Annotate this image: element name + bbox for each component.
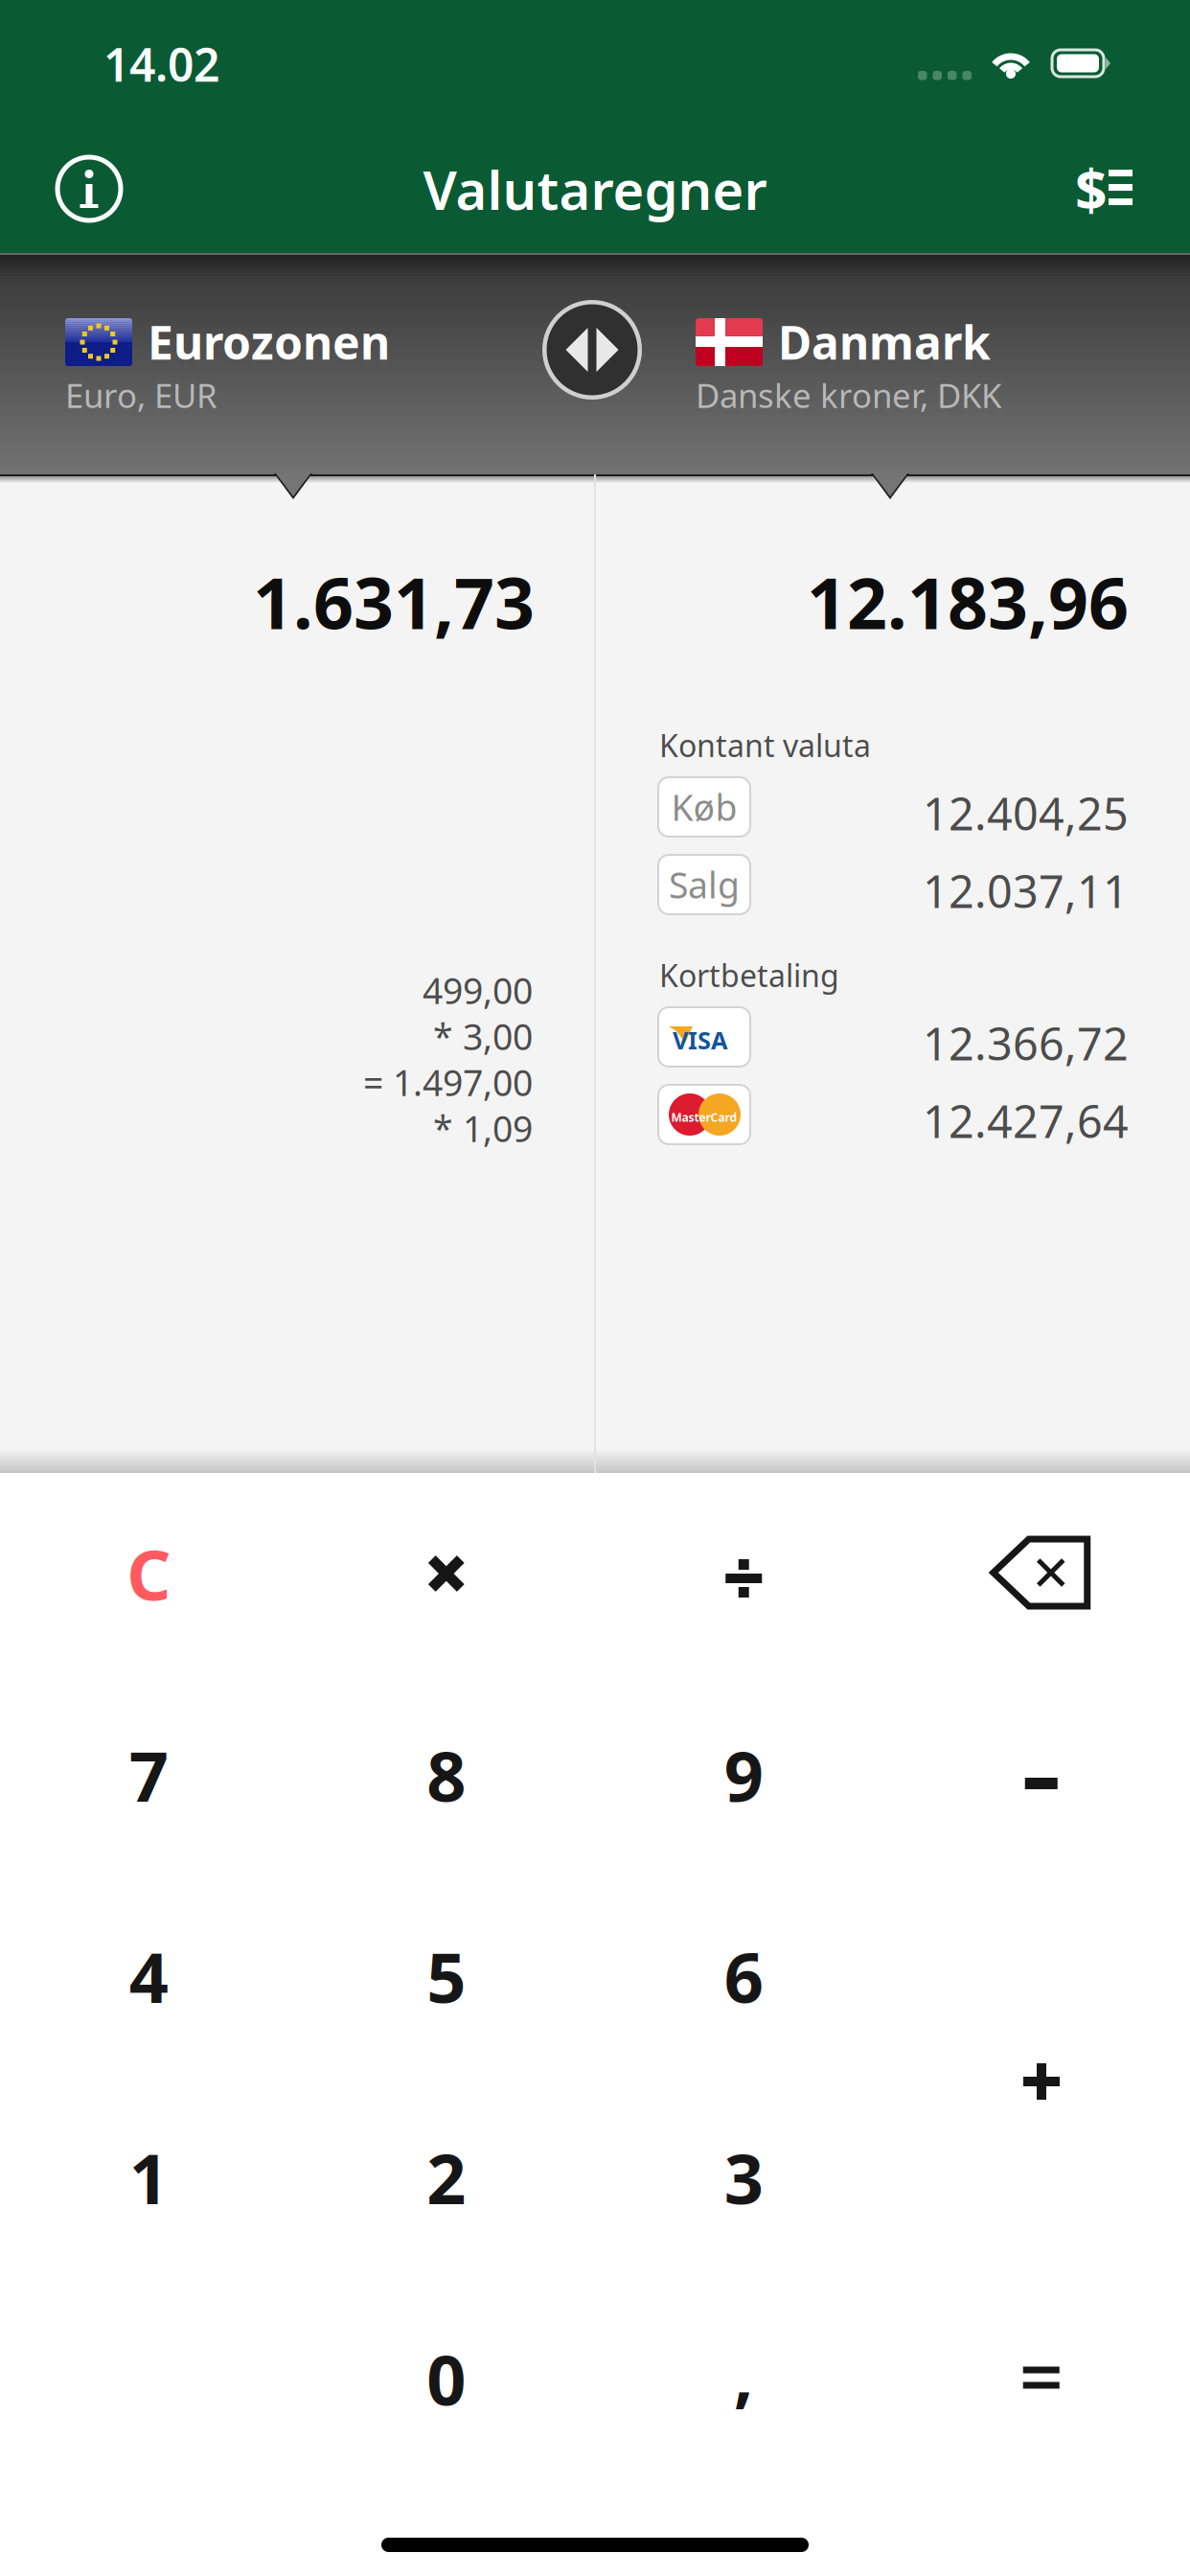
- staticText: 3: [724, 2132, 763, 2223]
- button[interactable]: Eurozonen: [65, 314, 515, 437]
- staticText: 0: [427, 2333, 466, 2424]
- button[interactable]: Four: [0, 1875, 297, 2077]
- button[interactable]: Minus: [892, 1674, 1190, 1875]
- button[interactable]: Seven: [0, 1674, 297, 1875]
- staticText: 4: [129, 1930, 168, 2022]
- staticText: 12.404,25: [923, 783, 1129, 843]
- staticText: VISA: [673, 1024, 728, 1056]
- staticText: 12.366,72: [923, 1013, 1129, 1073]
- button[interactable]: Nine: [595, 1674, 892, 1875]
- button[interactable]: Backspace: [892, 1473, 1190, 1674]
- button[interactable]: Eight: [297, 1674, 595, 1875]
- button[interactable]: Five: [297, 1875, 595, 2077]
- staticText: Danske kroner, DKK: [696, 373, 1001, 417]
- button[interactable]: Currency list: [1046, 131, 1161, 246]
- staticText: Kontant valuta: [659, 725, 871, 765]
- staticText: 8: [427, 1729, 466, 1821]
- button[interactable]: Clear: [0, 1473, 297, 1674]
- staticText: 6: [724, 1930, 763, 2022]
- staticText: $: [1075, 151, 1108, 226]
- staticText: Kortbetaling: [659, 955, 839, 995]
- staticText: 2: [427, 2132, 466, 2223]
- staticText: 9: [724, 1729, 763, 1821]
- staticText: MasterCard: [671, 1110, 737, 1125]
- button[interactable]: Multiply: [297, 1473, 595, 1674]
- staticText: 12.427,64: [923, 1091, 1129, 1150]
- staticText: Salg: [669, 861, 740, 908]
- staticText: Køb: [671, 783, 737, 831]
- staticText: Danmark: [778, 311, 991, 372]
- button[interactable]: Plus: [893, 1880, 1190, 2283]
- staticText: 14.02: [103, 33, 219, 94]
- staticText: = 1.497,00: [363, 1058, 533, 1106]
- button[interactable]: Danmark: [696, 314, 1146, 437]
- button[interactable]: Unused: [892, 2077, 1190, 2278]
- staticText: * 3,00: [433, 1012, 533, 1060]
- staticText: 7: [129, 1729, 168, 1821]
- button[interactable]: Decimal comma: [595, 2278, 892, 2479]
- staticText: Valutaregner: [423, 153, 767, 225]
- staticText: 499,00: [423, 966, 533, 1014]
- staticText: C: [127, 1528, 171, 1619]
- button[interactable]: Six: [595, 1875, 892, 2077]
- staticText: 12.183,96: [807, 555, 1129, 649]
- button[interactable]: Two: [297, 2077, 595, 2278]
- staticText: Euro, EUR: [65, 373, 217, 417]
- button[interactable]: Equals: [892, 2278, 1190, 2479]
- button[interactable]: One: [0, 2077, 297, 2278]
- button[interactable]: Three: [595, 2077, 892, 2278]
- staticText: 5: [427, 1930, 466, 2022]
- button[interactable]: Unused: [892, 1875, 1190, 2077]
- staticText: 1: [129, 2132, 168, 2223]
- staticText: 1.631,73: [253, 555, 535, 649]
- staticText: * 1,09: [433, 1104, 533, 1152]
- staticText: Eurozonen: [148, 311, 390, 372]
- staticText: ,: [734, 2328, 754, 2420]
- staticText: 12.037,11: [923, 861, 1129, 920]
- button[interactable]: Divide: [595, 1473, 892, 1674]
- button[interactable]: Zero: [297, 2278, 595, 2479]
- button[interactable]: Swap currencies: [542, 300, 642, 400]
- button[interactable]: Info: [32, 131, 147, 246]
